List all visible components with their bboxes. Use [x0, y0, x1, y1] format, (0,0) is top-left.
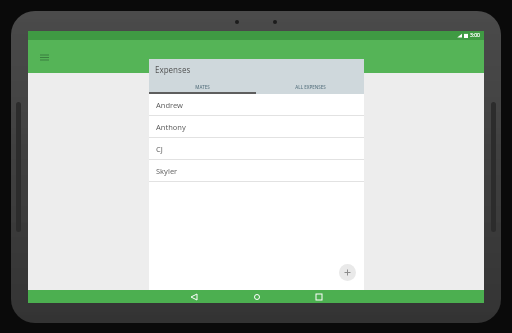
button[interactable]: CJ — [149, 138, 364, 159]
staticText: Expenses — [155, 64, 191, 75]
staticText: MATES — [195, 84, 210, 90]
button[interactable]: ALL EXPENSES — [256, 79, 364, 94]
button[interactable]: Home — [251, 291, 263, 303]
button[interactable]: Andrew — [149, 94, 364, 115]
button[interactable]: Recent apps — [313, 291, 325, 303]
button[interactable]: Back — [188, 291, 200, 303]
staticText: ALL EXPENSES — [295, 84, 326, 90]
staticText: CJ — [156, 144, 163, 154]
button[interactable]: Anthony — [149, 116, 364, 137]
staticText: Skyler — [156, 166, 178, 176]
staticText: Anthony — [156, 122, 186, 132]
button[interactable]: Open navigation drawer — [35, 48, 53, 66]
staticText: 3:00 — [470, 32, 480, 39]
button[interactable]: MATES — [149, 79, 256, 94]
button[interactable]: Add expense — [339, 264, 356, 281]
button[interactable]: Skyler — [149, 160, 364, 181]
staticText: Andrew — [156, 100, 183, 110]
